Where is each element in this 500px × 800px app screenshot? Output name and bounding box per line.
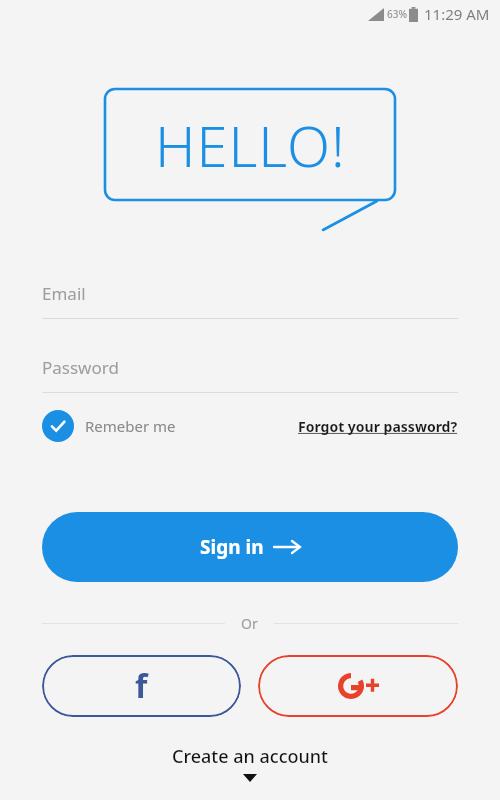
- button[interactable]: Forgot your password?: [298, 417, 458, 436]
- staticText: Create an account: [172, 744, 328, 769]
- staticText: Sign in: [200, 534, 264, 560]
- button[interactable]: Create an account: [42, 744, 458, 782]
- button[interactable]: Sign in with Google Plus: [258, 655, 458, 717]
- staticText: Forgot your password?: [298, 417, 458, 436]
- staticText: f: [135, 664, 148, 708]
- staticText: Email: [42, 282, 86, 305]
- button[interactable]: Remeber me: [42, 410, 176, 442]
- staticText: 11:29 AM: [424, 4, 490, 24]
- button[interactable]: Sign in with Facebook: [42, 655, 241, 717]
- button[interactable]: Email: [42, 282, 458, 319]
- staticText: Password: [42, 356, 119, 379]
- button[interactable]: Password: [42, 356, 458, 393]
- staticText: HELLO!: [155, 107, 346, 183]
- staticText: Remeber me: [85, 416, 176, 436]
- staticText: Or: [241, 614, 258, 633]
- button[interactable]: Sign in: [42, 512, 458, 582]
- staticText: 63%: [387, 7, 407, 21]
